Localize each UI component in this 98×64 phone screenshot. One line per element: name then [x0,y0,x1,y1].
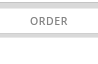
staticText: ORDER [30,14,69,28]
button[interactable]: ORDER [30,14,69,28]
